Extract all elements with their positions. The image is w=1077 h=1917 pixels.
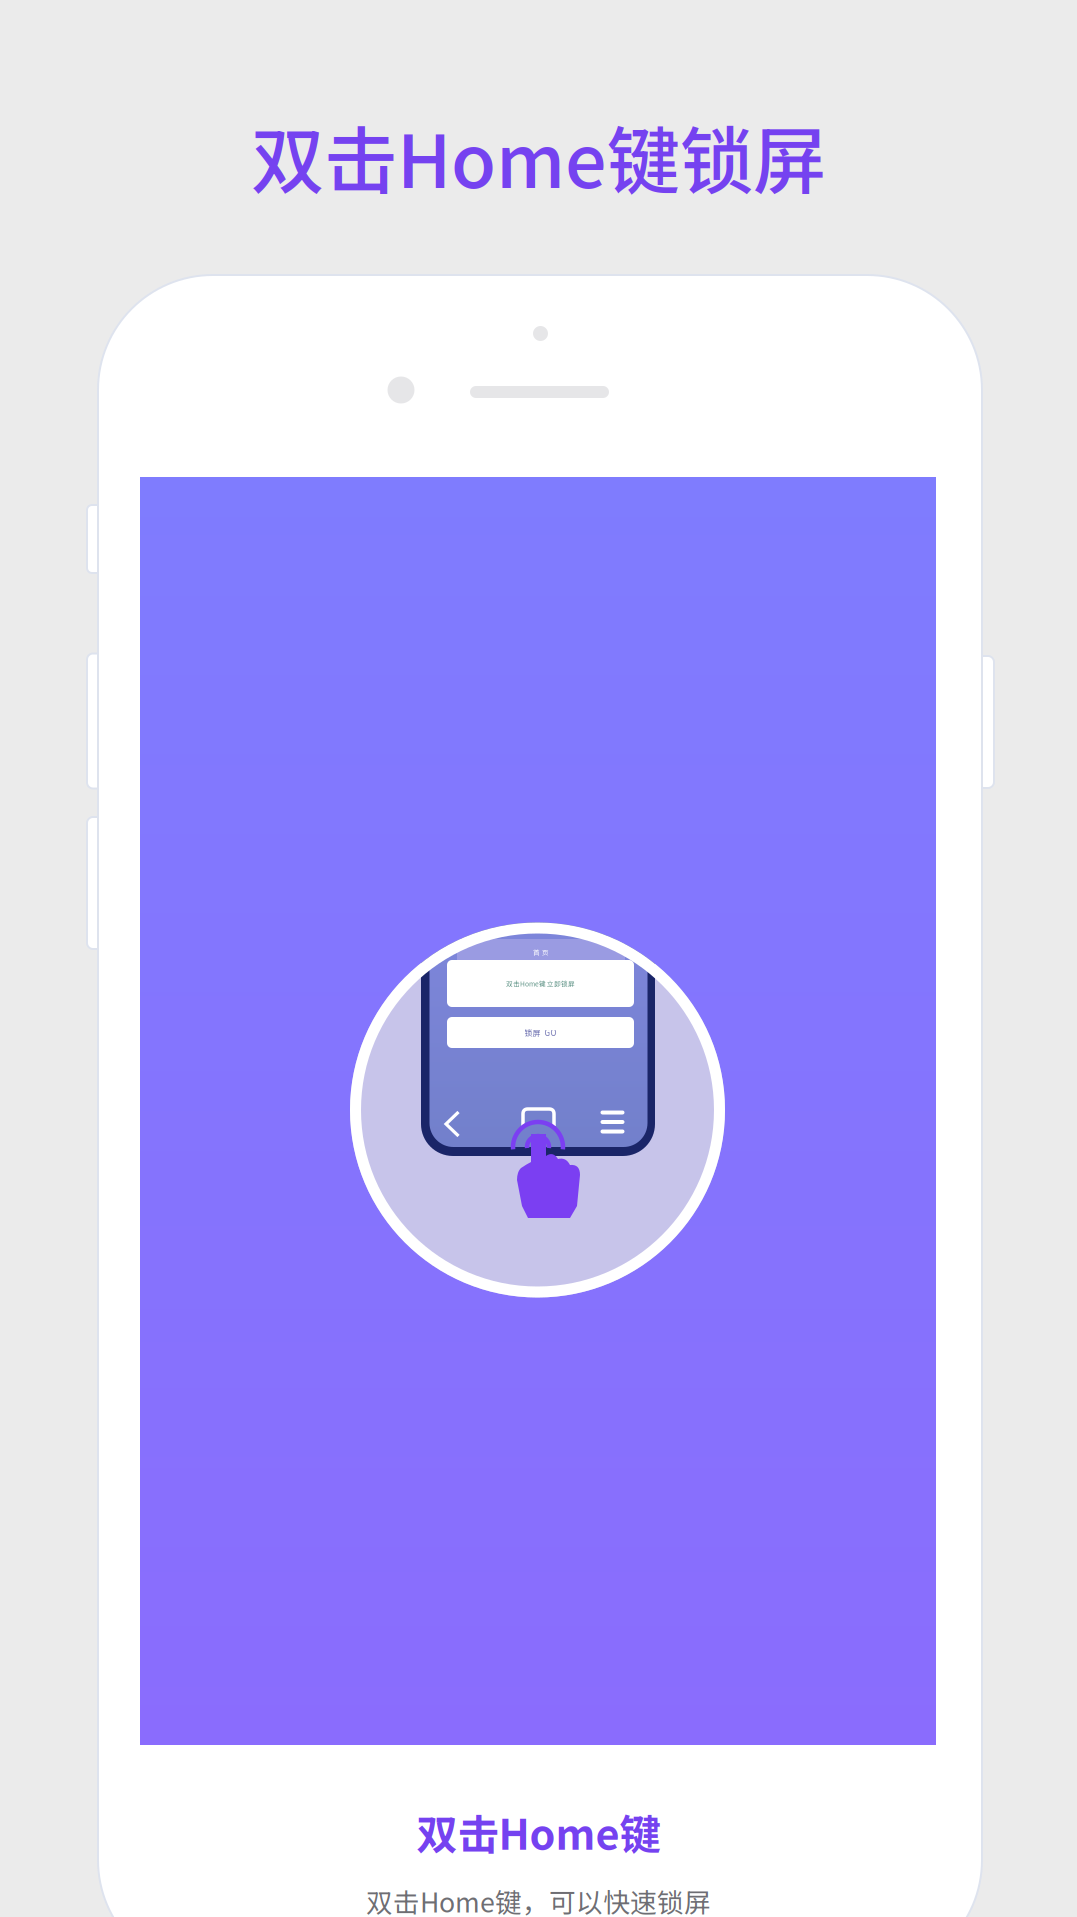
staticText: 双击Home键锁屏 <box>251 103 826 209</box>
staticText: 双击Home键 立即锁屏 <box>506 979 575 988</box>
staticText: 首 页 <box>533 947 549 957</box>
staticText: 双击Home键，可以快速锁屏 <box>366 1882 711 1917</box>
staticText: 双击Home键 <box>416 1802 660 1862</box>
button[interactable]: 双击Home键 <box>278 1806 798 1916</box>
staticText: 锁屏 GO <box>524 1027 556 1038</box>
